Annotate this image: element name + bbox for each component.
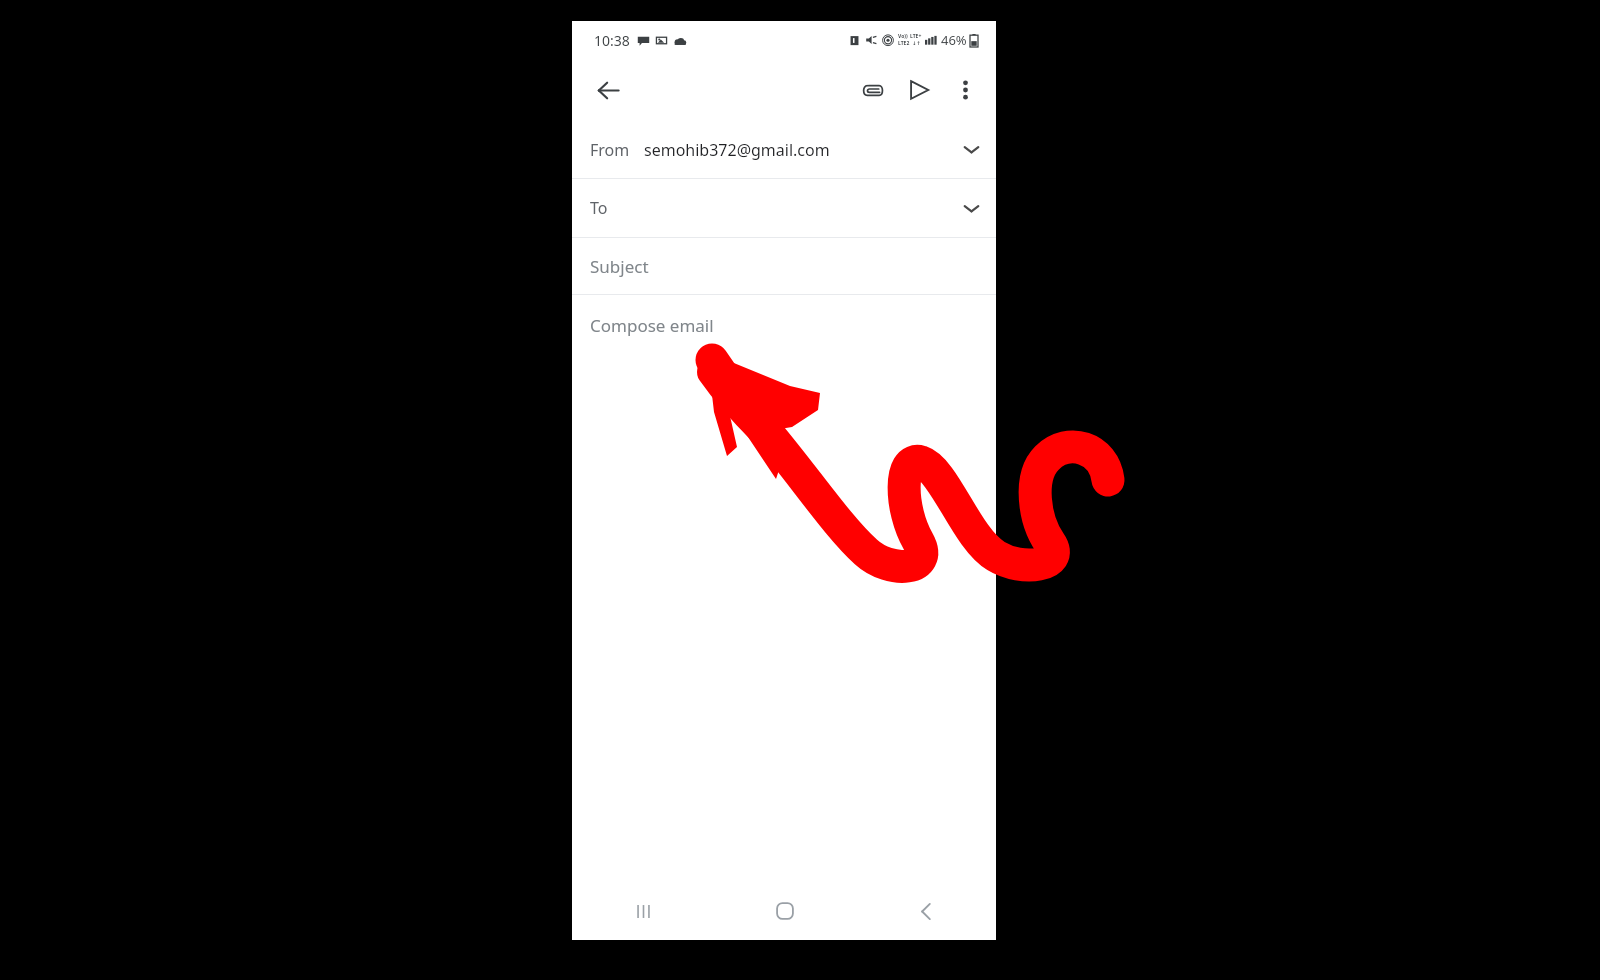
staticText: Vo)) <box>898 33 908 40</box>
button[interactable]: Attach file <box>850 67 896 113</box>
staticText: LTE+ <box>910 33 922 40</box>
button[interactable]: Send <box>896 67 942 113</box>
button[interactable]: Compose email <box>572 295 996 355</box>
staticText: ↓↑ <box>912 40 921 46</box>
staticText: Compose email <box>590 314 714 337</box>
button[interactable]: From <box>572 121 996 178</box>
staticText: Subject <box>590 255 649 278</box>
staticText: 46% <box>941 31 967 49</box>
staticText: semohib372@gmail.com <box>644 139 830 161</box>
button[interactable]: Recent apps <box>572 882 714 940</box>
button[interactable]: Back <box>855 882 996 940</box>
button[interactable]: Subject <box>572 238 996 294</box>
button[interactable]: Home <box>714 882 855 940</box>
staticText: LTE2 <box>898 40 910 47</box>
staticText: From <box>590 139 630 161</box>
button[interactable]: Back <box>586 68 630 112</box>
staticText: To <box>590 197 608 219</box>
button[interactable]: To <box>572 179 996 237</box>
staticText: 10:38 <box>594 31 630 50</box>
button[interactable]: More options <box>942 67 988 113</box>
